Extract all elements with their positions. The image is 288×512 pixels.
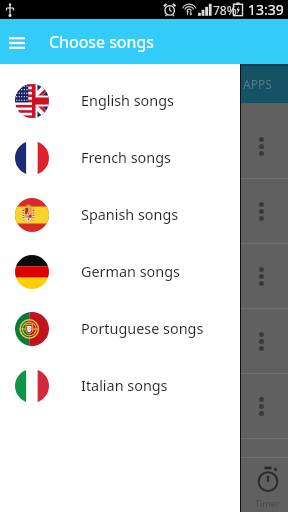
staticText: Portuguese songs <box>81 319 204 339</box>
staticText: French songs <box>81 148 171 168</box>
button[interactable]: German songs <box>0 243 288 300</box>
button[interactable]: More options <box>241 374 288 439</box>
button[interactable]: More options <box>241 244 288 309</box>
staticText: 13:39 <box>248 0 284 19</box>
button[interactable]: French songs <box>0 129 288 186</box>
button[interactable]: Italian songs <box>0 357 288 414</box>
staticText: Choose songs <box>49 31 154 53</box>
button[interactable]: More options <box>241 179 288 244</box>
button[interactable]: English songs <box>0 72 288 129</box>
button[interactable]: More options <box>241 114 288 179</box>
staticText: German songs <box>81 262 180 282</box>
button[interactable]: Open navigation menu <box>1 27 33 59</box>
button[interactable]: Portuguese songs <box>0 300 288 357</box>
button[interactable]: More options <box>241 309 288 374</box>
staticText: 78% <box>213 2 237 18</box>
staticText: English songs <box>81 91 174 111</box>
button[interactable]: Spanish songs <box>0 186 288 243</box>
staticText: APPS <box>243 76 272 92</box>
staticText: Timer <box>255 497 280 509</box>
staticText: Italian songs <box>81 376 168 396</box>
button[interactable]: Timer <box>241 458 288 512</box>
staticText: Spanish songs <box>81 205 179 225</box>
